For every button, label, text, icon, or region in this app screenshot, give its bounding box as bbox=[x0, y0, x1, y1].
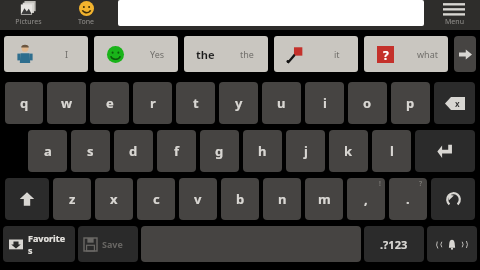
staticText: u bbox=[277, 94, 286, 112]
button[interactable]: n bbox=[263, 178, 301, 220]
button[interactable]: Enter bbox=[415, 130, 475, 172]
staticText: h bbox=[258, 142, 267, 160]
staticText: e bbox=[106, 94, 114, 112]
staticText: y bbox=[235, 94, 243, 112]
staticText: Yes bbox=[150, 48, 165, 60]
staticText: . bbox=[406, 190, 410, 208]
staticText: I bbox=[65, 48, 69, 60]
button[interactable]: the bbox=[184, 36, 268, 72]
staticText: o bbox=[363, 94, 372, 112]
button[interactable]: t bbox=[176, 82, 215, 124]
staticText: v bbox=[194, 190, 202, 208]
staticText: what bbox=[417, 48, 438, 60]
staticText: z bbox=[69, 190, 76, 208]
button[interactable]: r bbox=[133, 82, 172, 124]
button[interactable]: j bbox=[286, 130, 325, 172]
button[interactable]: o bbox=[348, 82, 387, 124]
staticText: l bbox=[390, 142, 394, 160]
staticText: Tone bbox=[78, 17, 94, 27]
button[interactable]: ? bbox=[364, 36, 448, 72]
button[interactable]: i bbox=[305, 82, 344, 124]
staticText: c bbox=[153, 190, 160, 208]
staticText: x bbox=[110, 190, 118, 208]
staticText: ? bbox=[419, 179, 423, 189]
button[interactable]: Pictures bbox=[0, 0, 56, 30]
button[interactable]: p bbox=[391, 82, 430, 124]
staticText: it bbox=[334, 48, 340, 60]
staticText: f bbox=[174, 142, 180, 160]
button[interactable]: w bbox=[47, 82, 86, 124]
button[interactable]: Sound bbox=[427, 226, 477, 262]
button[interactable]: a bbox=[28, 130, 67, 172]
button[interactable]: Menu bbox=[428, 0, 480, 30]
button[interactable]: , bbox=[347, 178, 385, 220]
button[interactable]: z bbox=[53, 178, 91, 220]
button[interactable]: . bbox=[389, 178, 427, 220]
button[interactable]: c bbox=[137, 178, 175, 220]
button[interactable]: Next bbox=[454, 36, 476, 72]
staticText: , bbox=[364, 190, 368, 208]
staticText: q bbox=[20, 94, 29, 112]
staticText: d bbox=[129, 142, 138, 160]
staticText: x bbox=[455, 98, 460, 109]
staticText: s bbox=[87, 142, 94, 160]
staticText: a bbox=[44, 142, 52, 160]
button[interactable] bbox=[118, 0, 424, 26]
button[interactable]: k bbox=[329, 130, 368, 172]
staticText: t bbox=[193, 94, 199, 112]
staticText: r bbox=[150, 94, 156, 112]
staticText: g bbox=[215, 142, 224, 160]
button[interactable]: I bbox=[4, 36, 88, 72]
button[interactable]: s bbox=[71, 130, 110, 172]
staticText: the bbox=[196, 47, 215, 62]
button[interactable]: Undo bbox=[431, 178, 475, 220]
staticText: ? bbox=[383, 47, 389, 63]
button[interactable]: Tone bbox=[58, 0, 114, 30]
button[interactable]: Backspace bbox=[434, 82, 475, 124]
staticText: Menu bbox=[445, 17, 464, 27]
staticText: j bbox=[304, 142, 308, 160]
button[interactable]: e bbox=[90, 82, 129, 124]
button[interactable]: q bbox=[5, 82, 43, 124]
button[interactable]: h bbox=[243, 130, 282, 172]
staticText: i bbox=[323, 94, 327, 112]
button[interactable]: .?123 bbox=[364, 226, 424, 262]
button[interactable]: Shift bbox=[5, 178, 49, 220]
button[interactable]: g bbox=[200, 130, 239, 172]
staticText: k bbox=[344, 142, 353, 160]
button[interactable]: Yes bbox=[94, 36, 178, 72]
button[interactable]: f bbox=[157, 130, 196, 172]
button[interactable]: Favorites bbox=[3, 226, 75, 262]
button[interactable]: b bbox=[221, 178, 259, 220]
button[interactable]: v bbox=[179, 178, 217, 220]
staticText: p bbox=[406, 94, 415, 112]
staticText: b bbox=[236, 190, 245, 208]
button[interactable]: u bbox=[262, 82, 301, 124]
button[interactable]: it bbox=[274, 36, 358, 72]
button[interactable]: l bbox=[372, 130, 411, 172]
staticText: the bbox=[240, 48, 254, 60]
button[interactable]: y bbox=[219, 82, 258, 124]
staticText: .?123 bbox=[380, 237, 408, 252]
staticText: n bbox=[278, 190, 287, 208]
staticText: Save bbox=[102, 238, 123, 250]
staticText: Pictures bbox=[15, 17, 42, 27]
button[interactable]: x bbox=[95, 178, 133, 220]
button[interactable]: m bbox=[305, 178, 343, 220]
staticText: w bbox=[61, 94, 73, 112]
button[interactable]: Save bbox=[78, 226, 138, 262]
staticText: Favorites bbox=[28, 232, 69, 256]
button[interactable]: d bbox=[114, 130, 153, 172]
staticText: ! bbox=[379, 179, 381, 189]
staticText: m bbox=[318, 190, 331, 208]
